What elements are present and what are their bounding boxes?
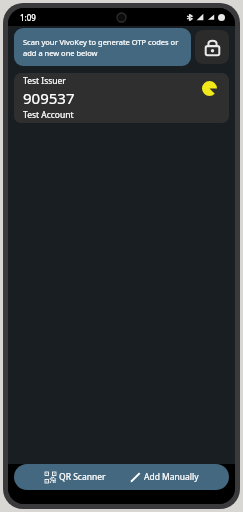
button[interactable]: Scan your VivoKey to generate OTP codes … (14, 28, 191, 66)
staticText: Test Account (23, 109, 74, 121)
button[interactable]: Add Manually (124, 467, 205, 487)
staticText: 1:09 (20, 12, 36, 23)
staticText: 909537 (23, 88, 75, 108)
staticText: QR Scanner (59, 471, 106, 483)
staticText: Test Issuer (23, 75, 66, 87)
button[interactable]: QR Scanner (39, 467, 112, 487)
staticText: Scan your VivoKey to generate OTP codes … (23, 37, 182, 58)
button[interactable]: Test Issuer (14, 73, 229, 123)
staticText: Add Manually (144, 471, 199, 483)
button[interactable]: Lock (195, 30, 229, 64)
